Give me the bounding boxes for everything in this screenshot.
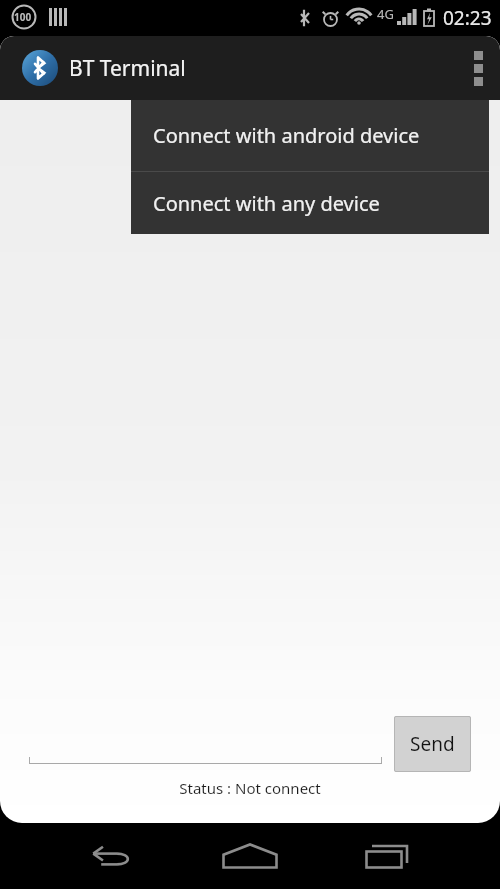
staticText: Connect with android device bbox=[153, 122, 420, 149]
staticText: Connect with any device bbox=[153, 190, 380, 217]
button[interactable]: Send bbox=[394, 716, 471, 772]
staticText: 02:23 bbox=[443, 5, 492, 31]
button[interactable]: Home bbox=[205, 823, 295, 889]
staticText: 4G bbox=[377, 5, 394, 23]
staticText: BT Terminal bbox=[69, 54, 186, 83]
button[interactable] bbox=[29, 728, 382, 764]
button[interactable]: Back bbox=[70, 823, 150, 889]
button[interactable]: Connect with any device bbox=[131, 172, 489, 234]
staticText: Status : Not connect bbox=[179, 778, 321, 798]
staticText: 100 bbox=[14, 10, 32, 24]
staticText: Send bbox=[410, 731, 455, 757]
button[interactable]: Recent apps bbox=[348, 823, 428, 889]
button[interactable]: Connect with android device bbox=[131, 100, 489, 171]
button[interactable]: More options bbox=[456, 36, 500, 100]
